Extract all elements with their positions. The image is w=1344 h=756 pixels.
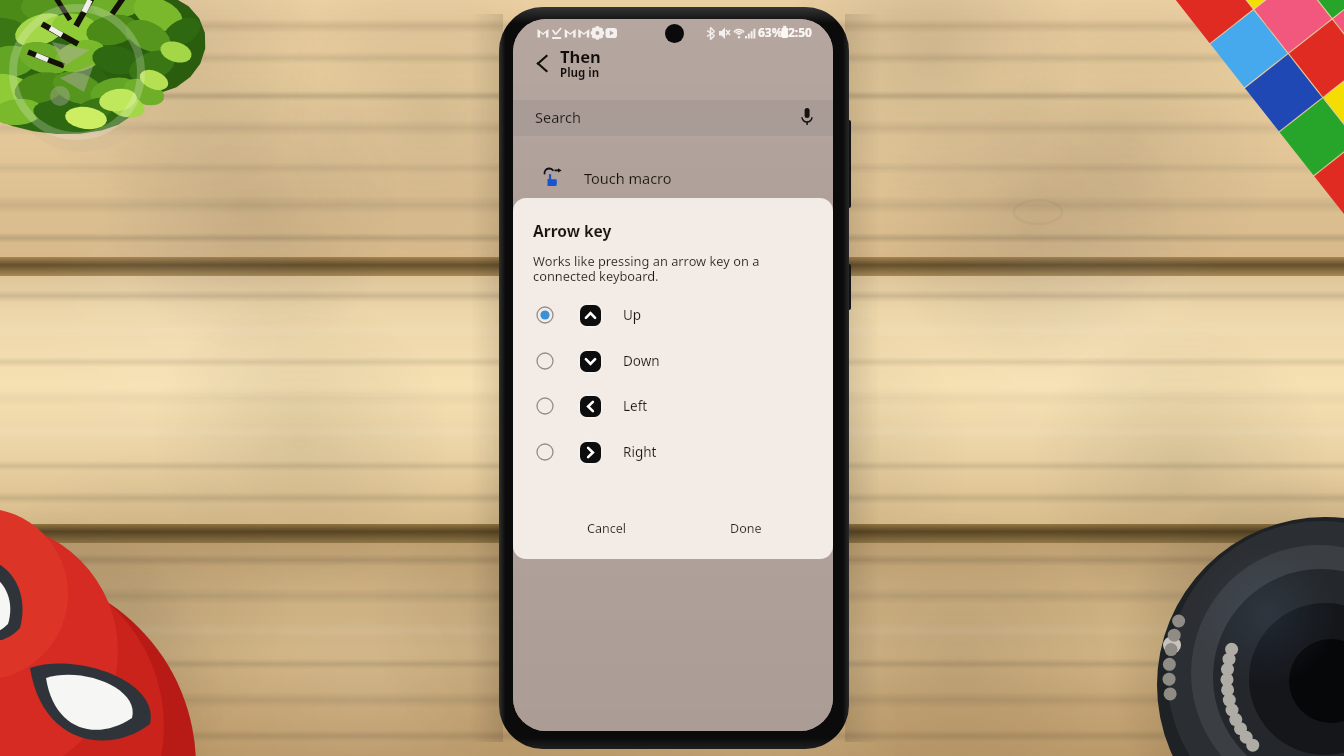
- staticText: Arrow key: [533, 220, 612, 241]
- staticText: Works like pressing an arrow key on a co…: [533, 252, 760, 285]
- staticText: Up: [623, 306, 642, 324]
- button[interactable]: Back: [525, 46, 559, 80]
- staticText: Cancel: [587, 520, 626, 537]
- staticText: Right: [623, 443, 657, 461]
- button[interactable]: Down: [513, 338, 833, 384]
- button[interactable]: Up: [513, 292, 833, 338]
- staticText: Then: [560, 45, 601, 67]
- button[interactable]: Touch macro: [513, 158, 833, 198]
- staticText: 2:50: [788, 24, 812, 40]
- staticText: 63%: [758, 24, 783, 40]
- button[interactable]: Cancel: [569, 511, 643, 545]
- button[interactable]: Voice search: [794, 106, 820, 128]
- button[interactable]: Left: [513, 383, 833, 429]
- staticText: Down: [623, 352, 660, 370]
- staticText: Left: [623, 397, 648, 415]
- staticText: Touch macro: [584, 168, 672, 188]
- staticText: Search: [535, 107, 581, 127]
- button[interactable]: Search: [513, 100, 833, 136]
- button[interactable]: Right: [513, 429, 833, 475]
- staticText: Plug in: [560, 65, 600, 81]
- staticText: Done: [730, 520, 762, 537]
- button[interactable]: Done: [709, 511, 783, 545]
- button: Arrow key: [513, 198, 833, 559]
